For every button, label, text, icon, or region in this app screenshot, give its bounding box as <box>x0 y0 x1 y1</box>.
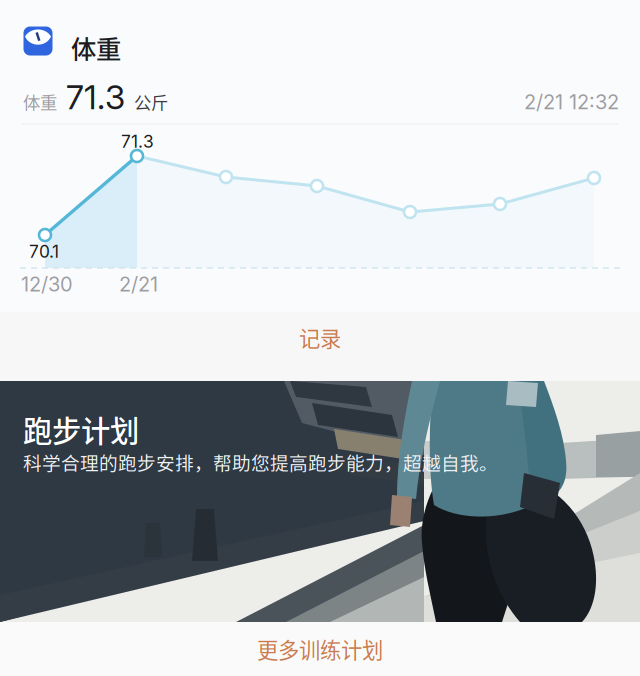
staticText: 12/30 <box>21 272 73 296</box>
staticText: 体重 <box>71 29 121 66</box>
staticText: 2/21 12:32 <box>524 90 619 114</box>
staticText: 71.3 <box>57 77 134 117</box>
button[interactable]: 跑步计划 <box>0 381 640 622</box>
button[interactable]: 记录 <box>0 312 640 381</box>
staticText: 公斤 <box>134 89 168 114</box>
staticText: 体重 <box>23 89 57 114</box>
staticText: 科学合理的跑步安排，帮助您提高跑步能力，超越自我。 <box>23 448 498 475</box>
staticText: 更多训练计划 <box>257 634 383 664</box>
staticText: 70.1 <box>29 241 59 262</box>
staticText: 跑步计划 <box>23 408 139 450</box>
staticText: 记录 <box>299 322 341 353</box>
staticText: 71.3 <box>121 131 154 152</box>
button[interactable]: 更多训练计划 <box>0 622 640 676</box>
staticText: 2/21 <box>119 272 158 296</box>
